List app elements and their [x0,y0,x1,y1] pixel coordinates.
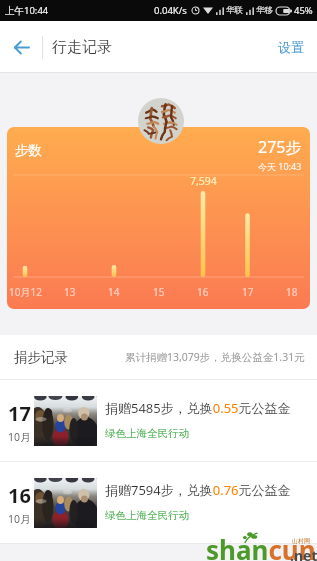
button[interactable]: Back [0,21,42,73]
staticText: 10月 [8,430,31,444]
staticText: 16 [197,285,209,299]
staticText: 15 [153,285,165,299]
staticText: shancun [206,532,316,561]
staticText: 华移 [256,5,273,16]
staticText: .net [290,546,317,561]
staticText: 13 [64,285,76,299]
staticText: 16 [8,482,31,509]
staticText: 17 [8,400,31,427]
staticText: 绿色上海全民行动 [105,509,189,522]
staticText: 18 [286,285,298,299]
staticText: 275步 [258,136,302,158]
staticText: 捐赠5485步，兑换0.55元公益金 [105,399,291,417]
staticText: 设置 [278,39,304,55]
staticText: 17 [242,285,254,299]
staticText: 华联 [226,5,243,16]
button[interactable]: 16 [0,462,317,543]
staticText: 45% [294,4,313,17]
staticText: 捐赠7594步，兑换0.76元公益金 [105,481,291,499]
staticText: 今天 10:43 [258,160,302,172]
staticText: 7,594 [190,174,217,188]
staticText: 10月12 [9,285,42,299]
staticText: 行走记录 [52,38,112,57]
staticText: 山村网 [292,537,310,545]
button[interactable]: 17 [0,380,317,461]
staticText: 捐步记录 [14,349,68,366]
staticText: 累计捐赠13,079步，兑换公益金1.31元 [125,350,305,364]
staticText: 上午10:44 [5,4,49,17]
button[interactable]: 设置 [276,33,306,61]
staticText: 10月 [8,512,31,526]
staticText: 步数 [15,142,42,159]
staticText: 绿色上海全民行动 [105,427,189,440]
staticText: 0.04K/s [154,4,187,17]
staticText: 14 [108,285,120,299]
